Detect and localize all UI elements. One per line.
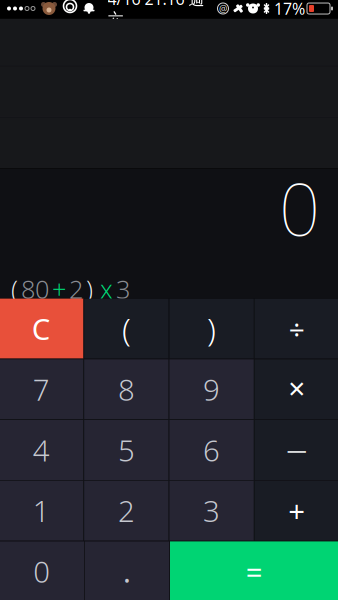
- staticText: 4/16 21:16 週六: [107, 0, 204, 29]
- staticText: 7: [33, 370, 50, 409]
- staticText: C: [32, 309, 51, 348]
- staticText: 0: [33, 552, 50, 591]
- button[interactable]: 3: [169, 481, 254, 541]
- button[interactable]: 9: [169, 359, 254, 419]
- button[interactable]: 5: [84, 420, 169, 480]
- staticText: x: [100, 272, 113, 306]
- button[interactable]: C: [0, 299, 83, 359]
- staticText: 6: [203, 430, 220, 469]
- button[interactable]: 0: [0, 541, 84, 600]
- staticText: 80: [21, 272, 49, 306]
- staticText: 0: [279, 160, 320, 256]
- staticText: +: [288, 491, 305, 530]
- staticText: @: [219, 2, 227, 15]
- button[interactable]: 4: [0, 420, 83, 480]
- staticText: 1: [33, 491, 50, 530]
- button[interactable]: 2: [84, 481, 169, 541]
- staticText: =: [246, 552, 263, 591]
- staticText: —: [287, 437, 307, 463]
- button[interactable]: 1: [0, 481, 83, 541]
- button[interactable]: ): [169, 299, 254, 359]
- staticText: 2: [118, 491, 135, 530]
- staticText: 2: [69, 272, 83, 306]
- staticText: 3: [203, 491, 220, 530]
- staticText: 9: [203, 370, 220, 409]
- button[interactable]: =: [170, 541, 338, 600]
- button[interactable]: 8: [84, 359, 169, 419]
- button[interactable]: ÷: [254, 299, 338, 359]
- button[interactable]: (: [84, 299, 169, 359]
- button[interactable]: +: [254, 481, 338, 541]
- staticText: .: [123, 552, 131, 591]
- button[interactable]: 7: [0, 359, 83, 419]
- staticText: 4: [33, 430, 50, 469]
- staticText: ✕: [287, 376, 306, 402]
- staticText: 3: [116, 272, 130, 306]
- staticText: ÷: [289, 310, 305, 347]
- staticText: ): [207, 307, 216, 350]
- staticText: ): [86, 272, 93, 306]
- staticText: 8: [118, 370, 135, 409]
- staticText: +: [52, 272, 66, 306]
- button[interactable]: .: [85, 541, 169, 600]
- staticText: (: [11, 272, 18, 306]
- staticText: 17%: [274, 0, 305, 19]
- button[interactable]: ✕: [254, 359, 338, 419]
- button[interactable]: 6: [169, 420, 254, 480]
- staticText: 5: [118, 430, 135, 469]
- staticText: (: [122, 307, 131, 350]
- button[interactable]: —: [254, 420, 338, 480]
